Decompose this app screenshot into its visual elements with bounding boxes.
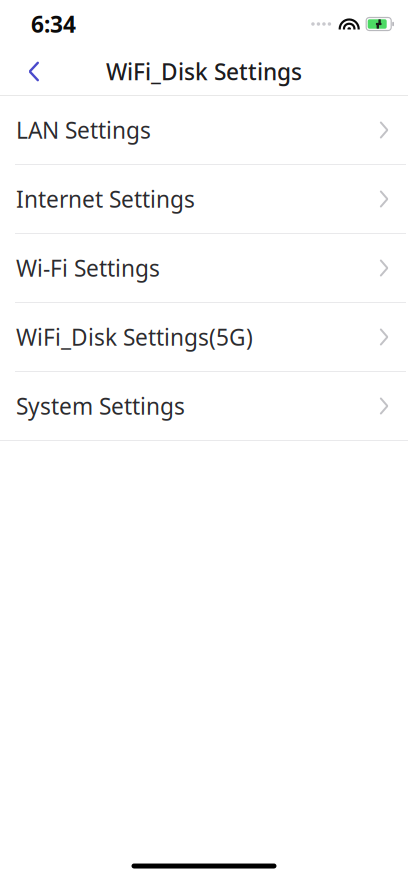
staticText: System Settings [16,391,185,421]
button[interactable]: LAN Settings [0,96,408,165]
button[interactable]: WiFi_Disk Settings(5G) [0,303,408,372]
button[interactable]: Internet Settings [0,165,408,234]
button[interactable]: Back [12,49,56,93]
button[interactable]: System Settings [0,372,408,441]
staticText: LAN Settings [16,115,151,145]
staticText: 6:34 [31,9,76,39]
staticText: Wi-Fi Settings [16,253,160,283]
staticText: Internet Settings [16,184,195,214]
button[interactable]: Wi-Fi Settings [0,234,408,303]
staticText: WiFi_Disk Settings [106,56,302,86]
staticText: WiFi_Disk Settings(5G) [16,322,253,352]
